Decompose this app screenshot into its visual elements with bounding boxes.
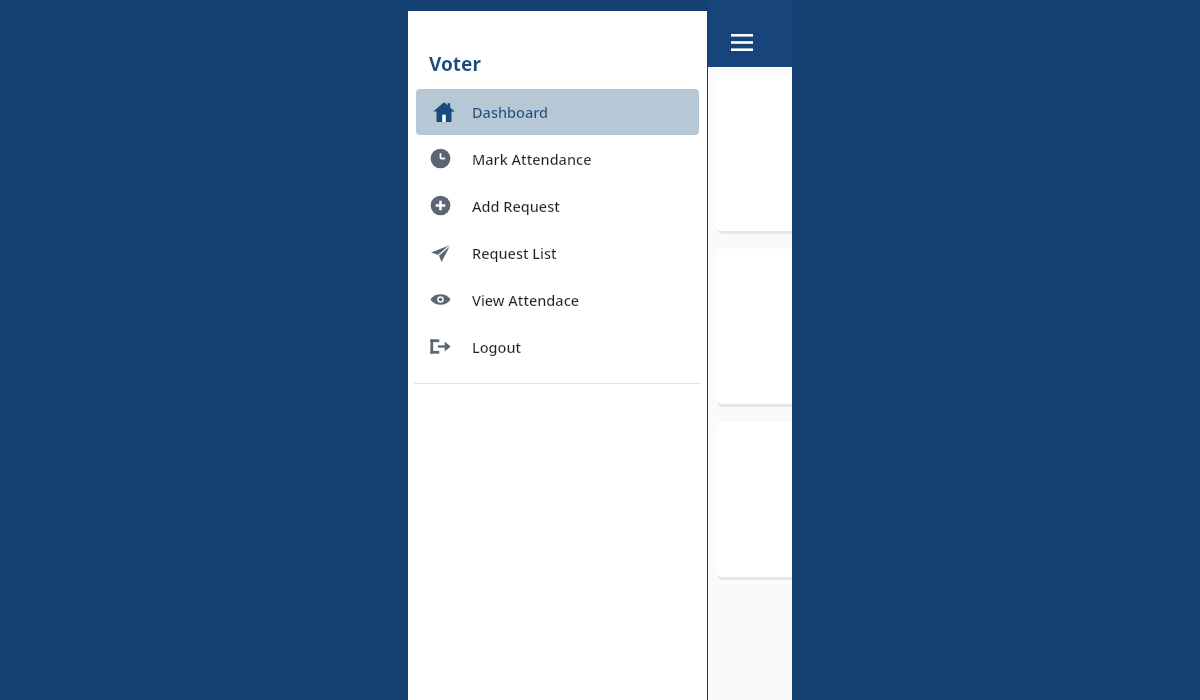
button[interactable]: Request List <box>408 229 707 276</box>
button[interactable]: Dashboard <box>416 89 699 135</box>
button[interactable]: View Attendance <box>716 249 1174 404</box>
button[interactable]: Logout <box>408 323 707 370</box>
button[interactable]: View Attendace <box>408 276 707 323</box>
button[interactable]: Add Request <box>408 182 707 229</box>
button[interactable]: Open navigation menu <box>720 20 764 64</box>
button[interactable]: Mark Attendance <box>716 76 1174 231</box>
staticText: Voter <box>429 51 481 77</box>
staticText: Dashboard <box>472 102 549 122</box>
button[interactable]: Mark Attendance <box>408 135 707 182</box>
staticText: Mark Attendance <box>472 149 592 169</box>
staticText: Logout <box>472 337 522 357</box>
staticText: Request List <box>472 243 557 263</box>
staticText: Add Request <box>472 196 560 216</box>
button[interactable]: Voter List <box>716 422 1174 577</box>
staticText: View Attendace <box>472 290 580 310</box>
